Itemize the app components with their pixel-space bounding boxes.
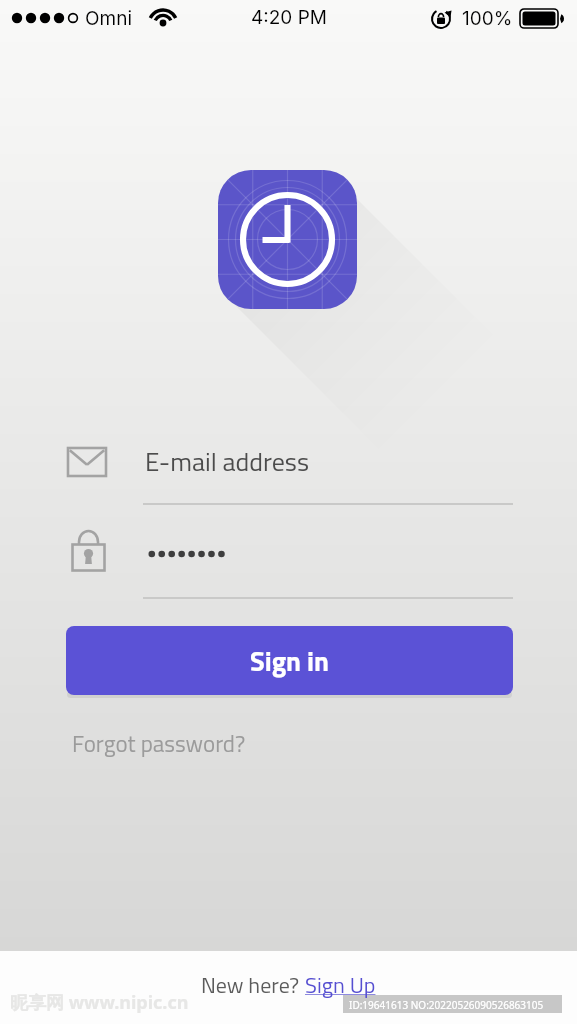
staticText: New here? [201, 968, 305, 1001]
button[interactable]: Sign in [66, 626, 513, 695]
staticText: Sign Up [305, 968, 376, 1001]
button[interactable]: E-mail address [145, 430, 513, 494]
staticText: 4:20 PM [251, 6, 327, 29]
staticText: E-mail address [145, 442, 309, 482]
button[interactable] [143, 534, 513, 598]
staticText: 100% [462, 7, 513, 30]
button[interactable]: Sign Up [305, 968, 376, 1001]
staticText: Sign in [250, 640, 329, 681]
staticText: Omni [85, 7, 132, 30]
staticText: ID:19641613 NO:20220526090526863105 [349, 998, 544, 1012]
staticText: Forgot password? [72, 726, 246, 761]
button[interactable]: Forgot password? [72, 726, 246, 761]
staticText: 昵享网 www.nipic.cn [10, 990, 189, 1015]
